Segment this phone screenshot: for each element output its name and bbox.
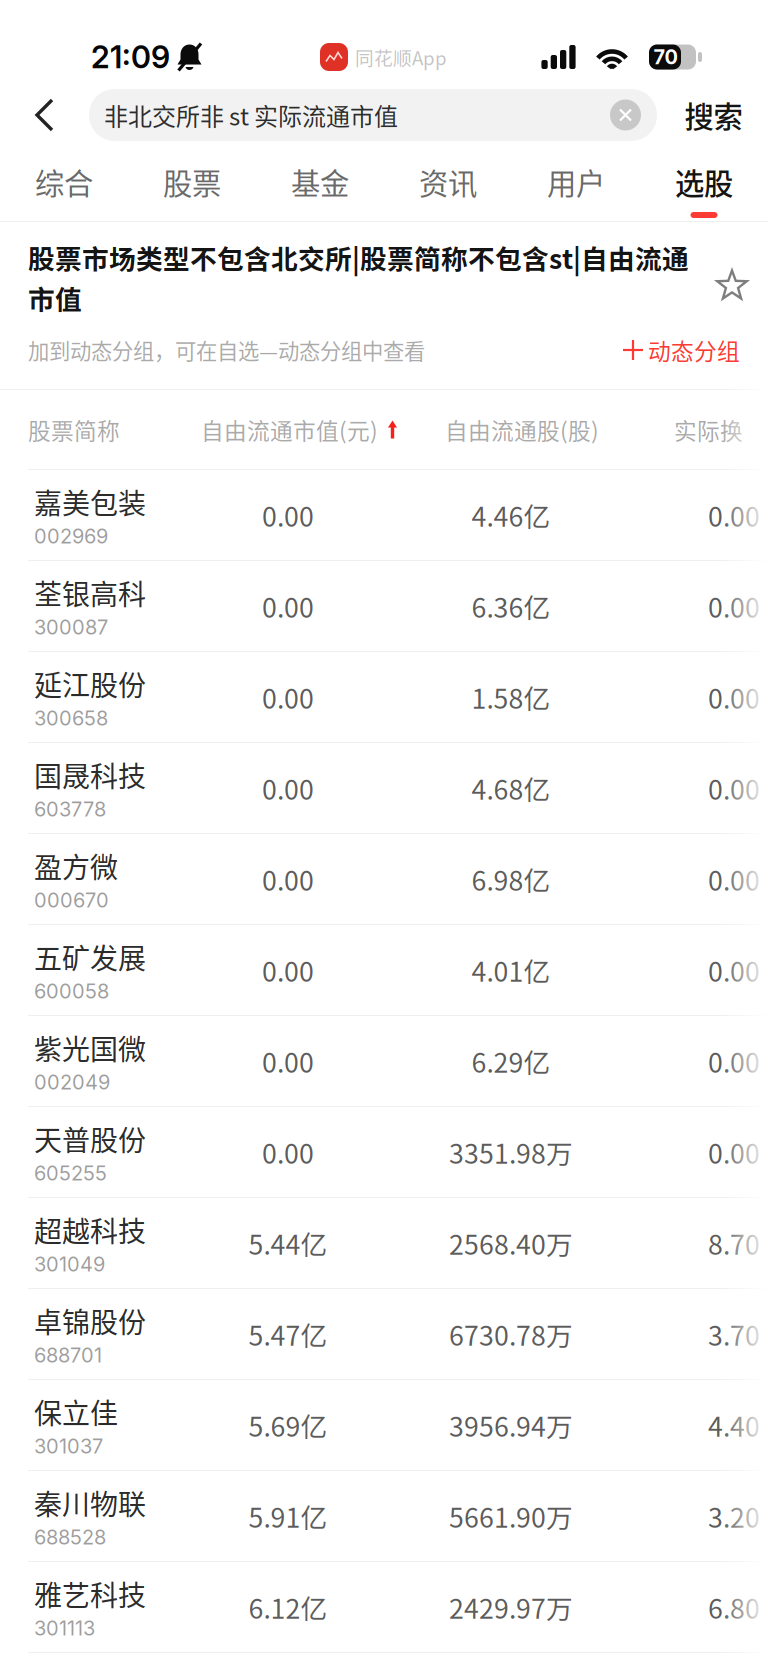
staticText: 0.00 <box>262 496 314 534</box>
staticText: 延江股份 <box>34 664 146 704</box>
staticText: 4.68亿 <box>471 769 550 807</box>
button[interactable]: 紫光国微 <box>0 1015 768 1106</box>
staticText: 0.00 <box>708 496 760 534</box>
button[interactable]: 非北交所非 st 实际流通市值 <box>89 89 657 141</box>
staticText: 70 <box>653 45 677 69</box>
staticText: 5.47亿 <box>248 1315 327 1353</box>
button[interactable]: 卓锦股份 <box>0 1288 768 1379</box>
staticText: 0.00 <box>262 1133 314 1171</box>
button[interactable]: 资讯 <box>384 150 512 221</box>
button[interactable]: 返回 <box>0 89 89 141</box>
staticText: 五矿发展 <box>34 937 146 977</box>
staticText: 5661.90万 <box>449 1497 573 1535</box>
button[interactable]: 荃银高科 <box>0 560 768 651</box>
button[interactable]: 股票 <box>128 150 256 221</box>
staticText: 搜索 <box>684 94 742 136</box>
staticText: 0.00 <box>708 678 760 716</box>
button[interactable]: 五矿发展 <box>0 924 768 1015</box>
staticText: 688528 <box>34 1525 106 1549</box>
staticText: 6.98亿 <box>471 860 550 898</box>
staticText: 21:09 <box>91 38 170 75</box>
staticText: 动态分组 <box>648 334 740 366</box>
button[interactable]: 动态分组 <box>622 334 740 366</box>
staticText: 自由流通市值(元) <box>201 413 378 446</box>
button[interactable]: 天普股份 <box>0 1106 768 1197</box>
staticText: 000670 <box>34 888 109 912</box>
staticText: 4.01亿 <box>471 951 550 989</box>
staticText: 2429.97万 <box>449 1588 573 1626</box>
staticText: 300658 <box>34 706 108 730</box>
staticText: 0.00 <box>262 678 314 716</box>
staticText: 加到动态分组，可在自选—动态分组中查看 <box>28 335 425 365</box>
staticText: 综合 <box>35 160 93 203</box>
button[interactable]: 选股 <box>640 150 768 221</box>
button[interactable]: 嘉美包装 <box>0 469 768 560</box>
staticText: 基金 <box>291 160 349 203</box>
button[interactable]: 国晟科技 <box>0 742 768 833</box>
staticText: 0.00 <box>708 769 760 807</box>
staticText: 0.00 <box>262 587 314 625</box>
staticText: 605255 <box>34 1161 107 1185</box>
staticText: 300087 <box>34 615 108 639</box>
staticText: 保立佳 <box>34 1392 118 1432</box>
staticText: 3.20 <box>708 1497 760 1535</box>
staticText: 市值 <box>28 279 82 317</box>
staticText: 5.91亿 <box>248 1497 327 1535</box>
button[interactable]: 盈方微 <box>0 833 768 924</box>
staticText: 301049 <box>34 1252 105 1276</box>
staticText: 688701 <box>34 1343 102 1367</box>
button[interactable]: 超越科技 <box>0 1197 768 1288</box>
staticText: 8.70 <box>708 1224 760 1262</box>
staticText: 6.29亿 <box>471 1042 550 1080</box>
staticText: 超越科技 <box>34 1210 146 1250</box>
staticText: 0.00 <box>262 860 314 898</box>
staticText: 0.00 <box>708 860 760 898</box>
staticText: 国晟科技 <box>34 755 146 795</box>
staticText: 选股 <box>675 160 733 203</box>
staticText: 用户 <box>547 160 605 203</box>
staticText: 002049 <box>34 1070 110 1094</box>
staticText: 0.00 <box>708 1133 760 1171</box>
staticText: 6.36亿 <box>471 587 550 625</box>
button[interactable]: 搜索 <box>657 89 768 141</box>
button[interactable]: 延江股份 <box>0 651 768 742</box>
staticText: 股票简称 <box>28 413 120 446</box>
staticText: 天普股份 <box>34 1119 146 1159</box>
staticText: 非北交所非 st 实际流通市值 <box>104 98 398 132</box>
staticText: 301037 <box>34 1434 103 1458</box>
button[interactable]: 保立佳 <box>0 1379 768 1470</box>
staticText: 0.00 <box>708 1042 760 1080</box>
button[interactable]: 收藏 <box>708 262 756 310</box>
staticText: 301113 <box>34 1616 95 1640</box>
button[interactable]: 林泰股份 <box>0 1652 768 1669</box>
button[interactable]: 用户 <box>512 150 640 221</box>
staticText: 3351.98万 <box>449 1133 573 1171</box>
staticText: 0.00 <box>262 951 314 989</box>
staticText: 同花顺App <box>355 43 447 70</box>
staticText: 荃银高科 <box>34 573 146 613</box>
staticText: 股票 <box>163 160 221 203</box>
staticText: 4.46亿 <box>471 496 550 534</box>
staticText: 5.44亿 <box>248 1224 327 1262</box>
staticText: 0.00 <box>708 587 760 625</box>
staticText: 5.69亿 <box>248 1406 327 1444</box>
staticText: 002969 <box>34 524 108 548</box>
staticText: 资讯 <box>419 160 477 203</box>
button[interactable]: 雅艺科技 <box>0 1561 768 1652</box>
staticText: 0.00 <box>262 769 314 807</box>
staticText: 卓锦股份 <box>34 1301 146 1341</box>
staticText: 0.00 <box>262 1042 314 1080</box>
staticText: 1.58亿 <box>471 678 550 716</box>
staticText: 秦川物联 <box>34 1483 146 1523</box>
staticText: 2568.40万 <box>449 1224 573 1262</box>
button[interactable]: 综合 <box>0 150 128 221</box>
staticText: 3.70 <box>708 1315 760 1353</box>
staticText: 6.80 <box>708 1588 760 1626</box>
staticText: 603778 <box>34 797 106 821</box>
staticText: 0.00 <box>708 951 760 989</box>
button[interactable]: 基金 <box>256 150 384 221</box>
staticText: 自由流通股(股) <box>445 413 599 446</box>
button[interactable]: 秦川物联 <box>0 1470 768 1561</box>
staticText: 600058 <box>34 979 109 1003</box>
